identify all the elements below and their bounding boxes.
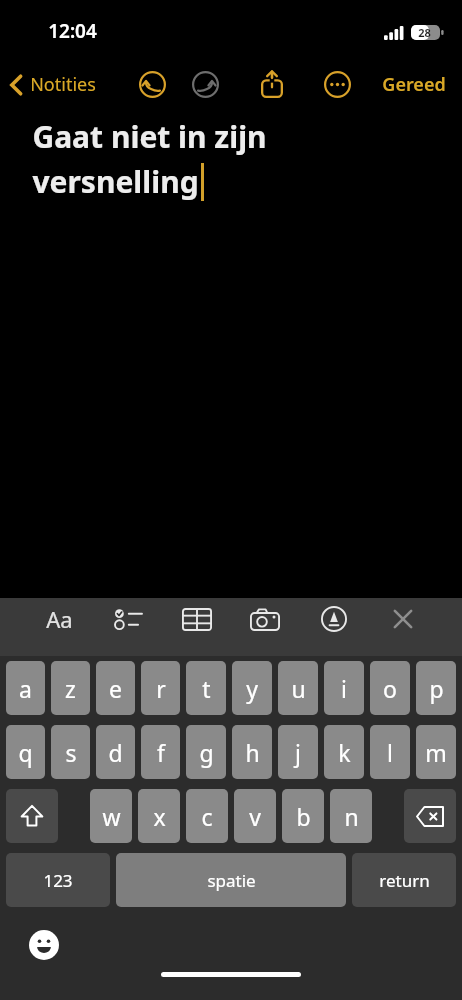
staticText: z <box>65 673 76 704</box>
button[interactable]: z <box>51 661 90 715</box>
button[interactable]: o <box>370 661 410 715</box>
button[interactable]: p <box>416 661 456 715</box>
button[interactable]: Share <box>252 64 292 104</box>
staticText: Notities <box>30 72 96 97</box>
staticText: 123 <box>43 869 73 892</box>
button[interactable]: g <box>186 725 226 779</box>
button[interactable]: Close <box>382 598 424 640</box>
staticText: t <box>202 673 211 704</box>
button[interactable]: Gereed <box>382 72 446 97</box>
staticText: e <box>109 673 122 704</box>
button[interactable]: x <box>138 789 180 843</box>
button[interactable]: Shift <box>6 789 58 843</box>
staticText: 12:04 <box>48 18 97 44</box>
button[interactable]: i <box>324 661 364 715</box>
staticText: v <box>249 801 261 832</box>
button[interactable]: k <box>324 725 364 779</box>
staticText: o <box>383 673 397 704</box>
staticText: s <box>65 737 77 768</box>
button[interactable]: Camera <box>244 598 286 640</box>
staticText: j <box>295 737 301 768</box>
staticText: i <box>341 673 347 704</box>
staticText: r <box>156 673 166 704</box>
staticText: m <box>425 737 447 768</box>
staticText: x <box>153 801 166 832</box>
button[interactable]: e <box>96 661 135 715</box>
staticText: u <box>291 673 306 704</box>
button[interactable]: a <box>6 661 45 715</box>
staticText: h <box>245 737 260 768</box>
staticText: n <box>344 801 359 832</box>
staticText: a <box>19 673 32 704</box>
staticText: b <box>296 801 311 832</box>
button[interactable]: Undo <box>133 65 171 103</box>
button[interactable]: Table <box>176 598 218 640</box>
button[interactable]: Notities <box>10 72 96 97</box>
button[interactable]: c <box>186 789 228 843</box>
button[interactable]: Emoji keyboard <box>22 923 66 967</box>
button[interactable]: Backspace <box>404 789 456 843</box>
button[interactable]: spatie <box>116 853 346 907</box>
staticText: versnelling <box>32 161 199 202</box>
button[interactable]: Redo <box>186 65 224 103</box>
button[interactable]: d <box>96 725 135 779</box>
staticText: Aa <box>46 604 73 634</box>
staticText: 28 <box>418 25 431 40</box>
button[interactable]: More options <box>318 65 356 103</box>
button[interactable]: f <box>141 725 180 779</box>
staticText: f <box>157 737 165 768</box>
staticText: w <box>102 801 121 832</box>
staticText: p <box>429 673 444 704</box>
staticText: g <box>199 737 214 768</box>
staticText: Gaat niet in zijn <box>32 116 267 157</box>
staticText: spatie <box>207 869 256 892</box>
button[interactable]: 123 <box>6 853 110 907</box>
staticText: d <box>108 737 123 768</box>
button[interactable]: n <box>330 789 372 843</box>
button[interactable]: Text format <box>38 598 80 640</box>
staticText: y <box>246 673 258 704</box>
staticText: q <box>18 737 33 768</box>
staticText: Gereed <box>382 72 446 97</box>
button[interactable]: b <box>282 789 324 843</box>
button[interactable]: u <box>278 661 318 715</box>
button[interactable]: h <box>232 725 272 779</box>
button[interactable]: Markup <box>313 598 355 640</box>
staticText: return <box>379 869 430 892</box>
button[interactable]: r <box>141 661 180 715</box>
button[interactable]: j <box>278 725 318 779</box>
button[interactable]: Checklist <box>107 598 149 640</box>
button[interactable]: y <box>232 661 272 715</box>
button[interactable]: w <box>90 789 132 843</box>
button[interactable]: v <box>234 789 276 843</box>
staticText: k <box>338 737 351 768</box>
button[interactable]: l <box>370 725 410 779</box>
button[interactable]: return <box>352 853 456 907</box>
button[interactable]: q <box>6 725 45 779</box>
button[interactable]: t <box>186 661 226 715</box>
button[interactable]: s <box>51 725 90 779</box>
button[interactable]: m <box>416 725 456 779</box>
staticText: l <box>387 737 393 768</box>
staticText: c <box>201 801 213 832</box>
